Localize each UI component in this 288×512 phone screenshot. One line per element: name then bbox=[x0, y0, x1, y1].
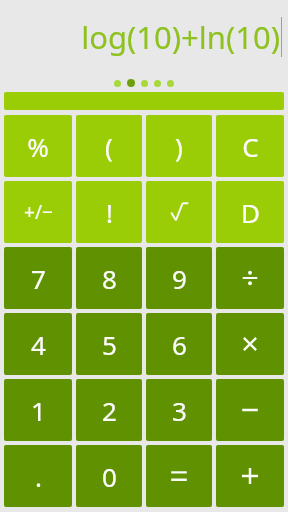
staticText: . bbox=[35, 459, 42, 494]
button[interactable] bbox=[216, 247, 284, 309]
button[interactable] bbox=[146, 181, 212, 243]
button[interactable]: C bbox=[216, 115, 284, 177]
button[interactable]: 3 bbox=[146, 379, 212, 441]
button[interactable]: 1 bbox=[4, 379, 72, 441]
button[interactable]: ( bbox=[76, 115, 142, 177]
button[interactable]: 8 bbox=[76, 247, 142, 309]
button[interactable]: ) bbox=[146, 115, 212, 177]
button[interactable] bbox=[216, 313, 284, 375]
button[interactable]: ! bbox=[76, 181, 142, 243]
staticText: ! bbox=[106, 195, 113, 230]
button[interactable]: 9 bbox=[146, 247, 212, 309]
staticText: log(10)+ln(10) bbox=[81, 16, 280, 58]
staticText: % bbox=[27, 129, 49, 164]
staticText: ) bbox=[175, 129, 183, 164]
staticText: 5 bbox=[102, 327, 117, 362]
button[interactable] bbox=[216, 379, 284, 441]
button[interactable]: 4 bbox=[4, 313, 72, 375]
staticText: 0 bbox=[102, 459, 117, 494]
button[interactable]: D bbox=[216, 181, 284, 243]
button[interactable]: 7 bbox=[4, 247, 72, 309]
staticText: C bbox=[242, 129, 259, 164]
button[interactable]: 2 bbox=[76, 379, 142, 441]
button[interactable]: . bbox=[4, 445, 72, 507]
button[interactable]: 5 bbox=[76, 313, 142, 375]
staticText: 4 bbox=[31, 327, 46, 362]
button[interactable] bbox=[4, 92, 284, 110]
staticText: 1 bbox=[31, 393, 46, 428]
staticText: 7 bbox=[31, 261, 46, 296]
staticText: 9 bbox=[172, 261, 187, 296]
button[interactable]: +/− bbox=[4, 181, 72, 243]
button[interactable]: 6 bbox=[146, 313, 212, 375]
staticText: 8 bbox=[102, 261, 117, 296]
button[interactable] bbox=[146, 445, 212, 507]
button[interactable]: 0 bbox=[76, 445, 142, 507]
staticText: 6 bbox=[172, 327, 187, 362]
staticText: +/− bbox=[24, 199, 53, 225]
staticText: 3 bbox=[172, 393, 187, 428]
button[interactable] bbox=[216, 445, 284, 507]
staticText: 2 bbox=[102, 393, 117, 428]
staticText: ( bbox=[105, 129, 113, 164]
staticText: D bbox=[241, 195, 260, 230]
button[interactable]: % bbox=[4, 115, 72, 177]
